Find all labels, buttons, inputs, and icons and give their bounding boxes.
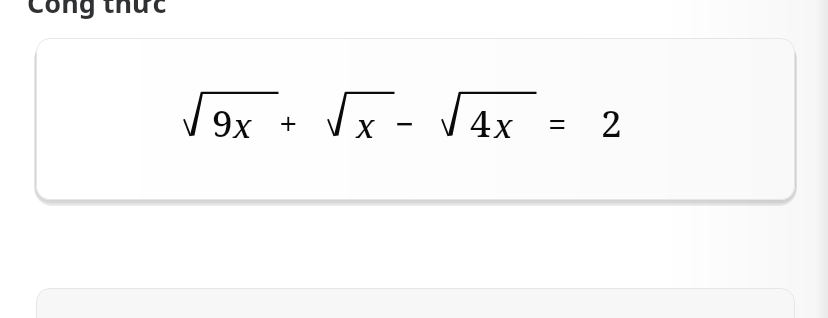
button[interactable]: Công thức: căn 9x cộng căn x trừ căn 4x … <box>36 38 795 200</box>
staticText: 2 <box>601 97 622 147</box>
staticText: 9 <box>212 97 233 147</box>
staticText: Công thức <box>27 0 167 21</box>
staticText: = <box>548 101 567 146</box>
other: Công thức: căn 9x cộng căn x trừ căn 4x … <box>181 84 651 154</box>
staticText: + <box>279 101 298 146</box>
staticText: − <box>395 101 415 146</box>
button[interactable] <box>36 288 795 318</box>
staticText: x <box>494 103 513 148</box>
staticText: 4 <box>470 97 491 147</box>
staticText: x <box>356 103 375 148</box>
button[interactable]: Công thức <box>27 0 167 21</box>
staticText: x <box>233 103 252 148</box>
